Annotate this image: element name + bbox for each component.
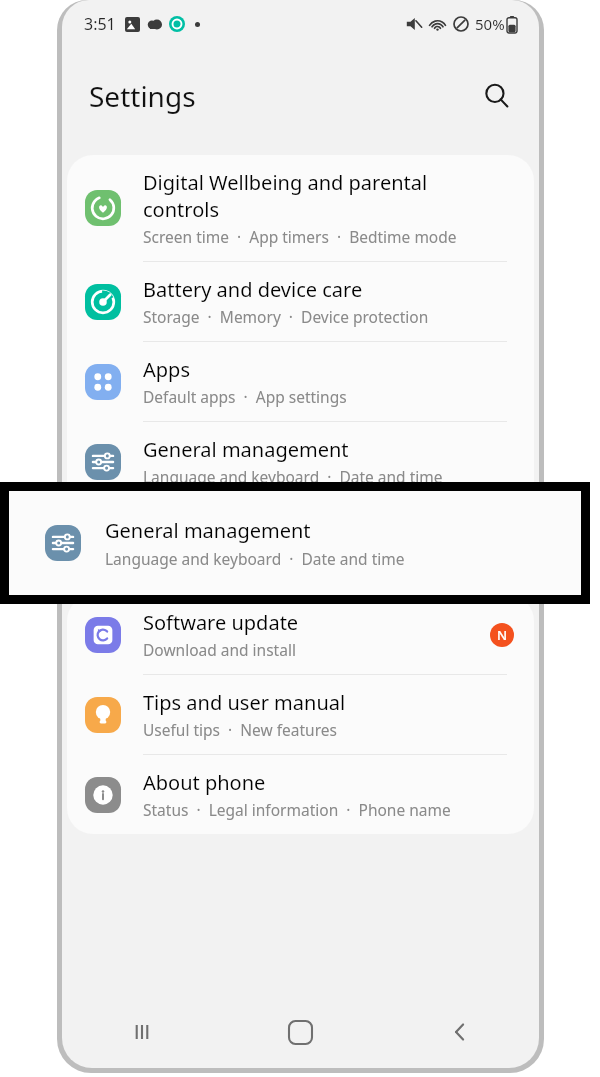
button[interactable]: Back — [380, 996, 539, 1068]
staticText: Language and keyboard · Date and time — [105, 548, 405, 569]
button[interactable]: Search — [475, 74, 519, 118]
button[interactable]: General management — [9, 491, 581, 595]
staticText: 3:51 — [84, 13, 116, 35]
staticText: Default apps · App settings — [143, 386, 347, 407]
staticText: Digital Wellbeing and parental — [143, 169, 428, 196]
button[interactable]: Apps — [67, 342, 534, 421]
staticText: Language and keyboard · Date and time — [143, 466, 443, 487]
staticText: Apps — [143, 356, 190, 383]
staticText: Screen time · App timers · Bedtime mode — [143, 226, 457, 247]
staticText: General management — [143, 436, 349, 463]
staticText: TalkBack · Mono audio · Assistant menu — [143, 546, 447, 567]
staticText: Settings — [89, 77, 196, 115]
staticText: Useful tips · New features — [143, 719, 337, 740]
staticText: controls — [143, 196, 219, 223]
staticText: N — [497, 626, 508, 644]
button[interactable]: Software update — [67, 595, 534, 674]
staticText: Download and install — [143, 639, 296, 660]
button[interactable]: Battery and device care — [67, 262, 534, 341]
button[interactable]: About phone — [67, 755, 534, 834]
button[interactable]: Tips and user manual — [67, 675, 534, 754]
staticText: Software update — [143, 609, 299, 636]
staticText: About phone — [143, 769, 266, 796]
button[interactable]: Home — [221, 996, 380, 1068]
staticText: Status · Legal information · Phone name — [143, 799, 451, 820]
button[interactable]: General management — [67, 422, 534, 501]
staticText: Tips and user manual — [143, 689, 346, 716]
staticText: Battery and device care — [143, 276, 363, 303]
staticText: Storage · Memory · Device protection — [143, 306, 429, 327]
staticText: Accessibility — [143, 516, 256, 543]
staticText: 50% — [475, 14, 505, 34]
button[interactable]: Digital Wellbeing and parental — [67, 155, 534, 261]
staticText: General management — [105, 517, 311, 544]
button[interactable]: Recents — [62, 996, 221, 1068]
button[interactable]: Accessibility — [67, 502, 534, 581]
